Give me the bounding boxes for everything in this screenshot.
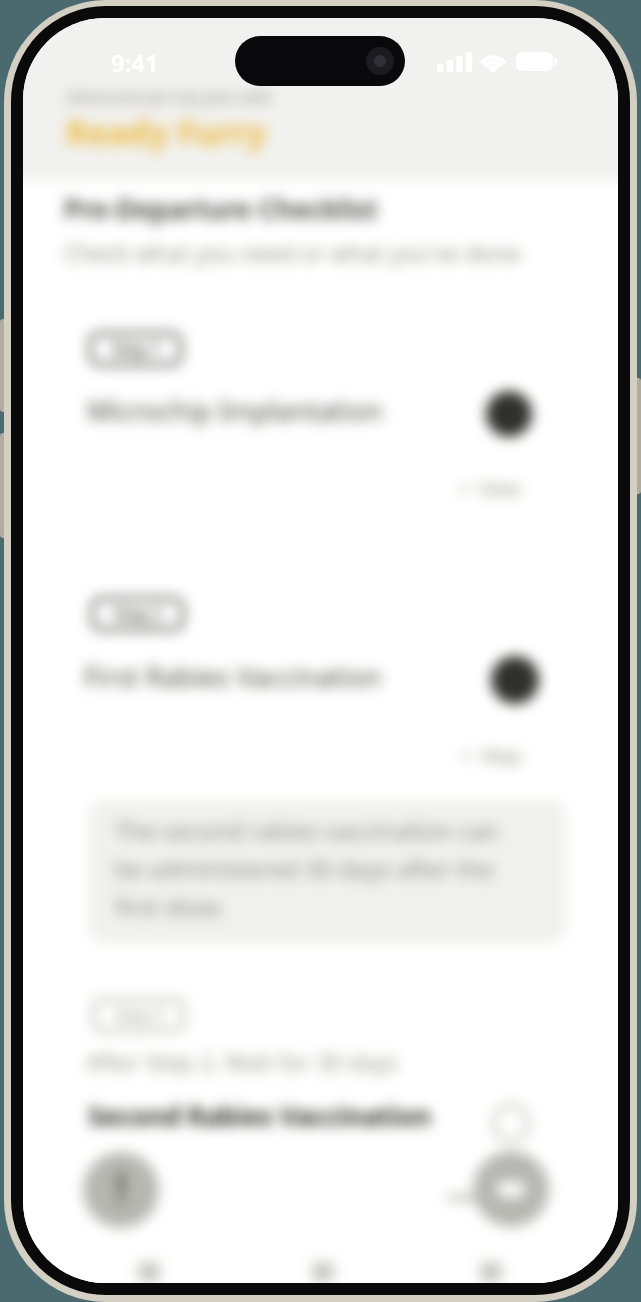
staticText: After Step 2, Wait for 30 days [86, 1046, 399, 1077]
button[interactable] [312, 1262, 334, 1282]
button[interactable]: Microchip Implantation [87, 392, 384, 429]
button[interactable] [492, 1104, 530, 1142]
button[interactable] [83, 1152, 159, 1228]
button[interactable] [491, 656, 539, 704]
button[interactable]: + View [458, 476, 521, 502]
staticText: Step 2 [114, 603, 162, 625]
staticText: 9:41 [111, 46, 159, 79]
staticText: Check what you need or what you've done [64, 237, 521, 268]
staticText: The second rabies vaccination can be adm… [115, 814, 499, 923]
button[interactable] [473, 1151, 549, 1227]
button[interactable] [138, 1262, 160, 1282]
button[interactable]: Step 3 [92, 998, 185, 1032]
staticText: Step 3 [115, 1004, 163, 1026]
button[interactable] [486, 391, 532, 437]
staticText: Ready Furry [66, 110, 267, 155]
button[interactable]: Step 1 [89, 332, 182, 366]
button[interactable]: + Map [461, 743, 522, 769]
button[interactable]: Step 2 [91, 597, 184, 631]
button[interactable]: Second Rabies Vaccination [88, 1098, 432, 1133]
staticText: Step 1 [112, 338, 160, 360]
staticText: Pre-Departure Checklist [64, 190, 378, 227]
button[interactable]: First Rabies Vaccination [84, 658, 382, 695]
button[interactable] [480, 1262, 502, 1282]
staticText: Advanced pet trip plan with [66, 86, 273, 108]
